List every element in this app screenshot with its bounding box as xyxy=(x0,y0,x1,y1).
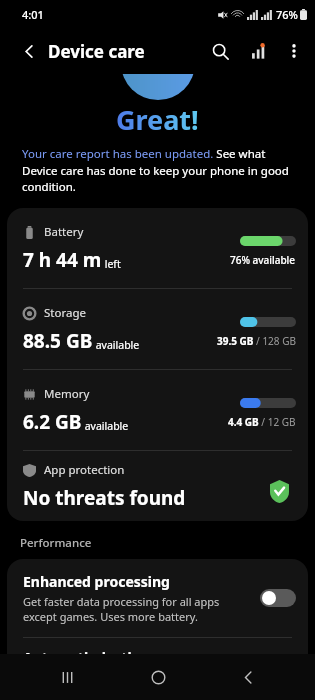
staticText: Performance xyxy=(20,535,92,551)
staticText: 88.5 GB xyxy=(23,328,93,354)
button[interactable]: Enhanced processing toggle xyxy=(260,589,296,607)
staticText: Get faster data processing for all apps … xyxy=(23,594,252,624)
button[interactable]: Search xyxy=(201,32,239,70)
staticText: Storage xyxy=(44,305,86,321)
staticText: 76% xyxy=(276,7,298,22)
button[interactable]: Storage xyxy=(7,289,308,369)
staticText: available xyxy=(93,338,140,352)
staticText: Your care report has been updated. See w… xyxy=(22,146,293,194)
button[interactable]: Auto optimisation xyxy=(7,638,308,672)
button[interactable]: Back xyxy=(225,654,271,700)
button[interactable]: Battery xyxy=(7,208,308,288)
button[interactable]: Statistics xyxy=(239,32,277,70)
staticText: No threats found xyxy=(23,485,186,511)
staticText: 76% available xyxy=(230,253,296,267)
button[interactable]: Back xyxy=(10,32,48,70)
staticText: 6.2 GB xyxy=(23,409,82,435)
staticText: Auto optimisation xyxy=(23,648,150,667)
button[interactable]: App protection xyxy=(7,451,308,521)
staticText: 4.4 GB / 12 GB xyxy=(228,415,296,429)
button[interactable]: More options xyxy=(277,32,311,70)
staticText: Memory xyxy=(44,386,90,402)
staticText: left xyxy=(102,257,121,271)
button[interactable]: Memory xyxy=(7,370,308,450)
button[interactable]: Enhanced processing xyxy=(7,559,308,637)
staticText: App protection xyxy=(44,462,125,478)
button[interactable]: Recents xyxy=(44,654,90,700)
staticText: available xyxy=(82,419,129,433)
staticText: Battery xyxy=(44,224,84,240)
staticText: 7 h 44 m xyxy=(23,247,102,273)
staticText: Device care xyxy=(48,40,145,63)
staticText: 4:01 xyxy=(22,7,44,22)
staticText: Great! xyxy=(116,101,199,138)
staticText: 39.5 GB / 128 GB xyxy=(217,334,296,348)
staticText: Enhanced processing xyxy=(23,572,170,591)
button[interactable]: Home xyxy=(135,654,181,700)
